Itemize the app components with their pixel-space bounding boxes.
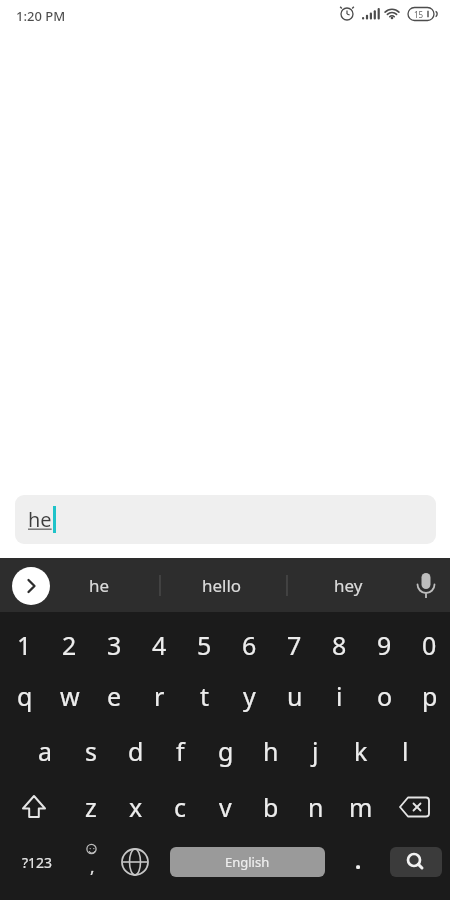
button[interactable]: 1 <box>2 620 47 670</box>
button[interactable]: q <box>2 671 47 721</box>
button[interactable]: he <box>69 565 129 605</box>
button[interactable]: 0 <box>407 620 450 670</box>
button[interactable]: h <box>248 726 293 776</box>
button[interactable]: m <box>338 782 383 832</box>
button[interactable]: . <box>338 838 378 882</box>
staticText: t <box>200 679 210 713</box>
button[interactable]: k <box>338 726 383 776</box>
staticText: w <box>60 679 80 713</box>
button[interactable]: z <box>68 782 113 832</box>
staticText: l <box>402 734 409 768</box>
button[interactable] <box>12 567 50 605</box>
button[interactable]: r <box>137 671 182 721</box>
staticText: y <box>243 679 256 713</box>
staticText: i <box>336 679 343 713</box>
staticText: hey <box>334 574 363 597</box>
button[interactable]: ?123 <box>9 840 65 884</box>
button[interactable]: e <box>92 671 137 721</box>
button[interactable]: 3 <box>92 620 137 670</box>
button[interactable]: c <box>158 782 203 832</box>
button[interactable]: English <box>170 847 325 877</box>
staticText: 9 <box>377 628 392 662</box>
staticText: z <box>85 790 97 824</box>
staticText: g <box>218 734 234 768</box>
button[interactable]: , <box>72 851 112 881</box>
staticText: he <box>28 506 52 533</box>
staticText: j <box>312 734 319 768</box>
button[interactable] <box>390 847 442 877</box>
button[interactable]: p <box>407 671 450 721</box>
staticText: 1 <box>17 628 32 662</box>
button[interactable]: u <box>272 671 317 721</box>
staticText: r <box>154 679 165 713</box>
staticText: he <box>89 574 110 597</box>
staticText: n <box>308 790 324 824</box>
staticText: q <box>17 679 33 713</box>
staticText: English <box>225 853 270 871</box>
button[interactable]: 2 <box>47 620 92 670</box>
staticText: a <box>38 734 53 768</box>
button[interactable]: v <box>203 782 248 832</box>
staticText: k <box>354 734 368 768</box>
button[interactable]: a <box>23 726 68 776</box>
button[interactable]: hello <box>177 565 267 605</box>
button[interactable]: g <box>203 726 248 776</box>
button[interactable]: b <box>248 782 293 832</box>
button[interactable]: 7 <box>272 620 317 670</box>
button[interactable]: w <box>47 671 92 721</box>
staticText: 5 <box>197 628 212 662</box>
button[interactable]: 9 <box>362 620 407 670</box>
button[interactable]: x <box>113 782 158 832</box>
staticText: 6 <box>242 628 257 662</box>
staticText: 4 <box>152 628 167 662</box>
button[interactable]: j <box>293 726 338 776</box>
staticText: , <box>90 855 95 878</box>
staticText: 8 <box>332 628 347 662</box>
staticText: d <box>128 734 144 768</box>
staticText: m <box>349 790 373 824</box>
button[interactable]: 6 <box>227 620 272 670</box>
staticText: x <box>129 790 143 824</box>
button[interactable]: 8 <box>317 620 362 670</box>
staticText: u <box>287 679 303 713</box>
staticText: 0 <box>422 628 437 662</box>
staticText: . <box>355 845 362 875</box>
button[interactable]: t <box>182 671 227 721</box>
button[interactable]: 5 <box>182 620 227 670</box>
button[interactable]: 4 <box>137 620 182 670</box>
button[interactable]: o <box>362 671 407 721</box>
button[interactable]: d <box>113 726 158 776</box>
button[interactable]: hey <box>313 565 383 605</box>
staticText: hello <box>202 574 242 597</box>
staticText: 2 <box>62 628 77 662</box>
staticText: f <box>176 734 185 768</box>
button[interactable]: f <box>158 726 203 776</box>
staticText: ?123 <box>22 853 53 872</box>
staticText: 7 <box>287 628 302 662</box>
staticText: 3 <box>107 628 122 662</box>
staticText: s <box>85 734 97 768</box>
staticText: v <box>219 790 232 824</box>
staticText: b <box>263 790 279 824</box>
staticText: 1:20 PM <box>16 7 66 25</box>
staticText: o <box>377 679 393 713</box>
staticText: e <box>107 679 122 713</box>
button[interactable]: i <box>317 671 362 721</box>
staticText: 15 <box>414 9 424 20</box>
button[interactable]: l <box>383 726 428 776</box>
staticText: p <box>422 679 438 713</box>
staticText: h <box>263 734 279 768</box>
button[interactable]: y <box>227 671 272 721</box>
button[interactable]: n <box>293 782 338 832</box>
staticText: c <box>174 790 187 824</box>
button[interactable]: s <box>68 726 113 776</box>
button[interactable]: he <box>15 495 436 544</box>
